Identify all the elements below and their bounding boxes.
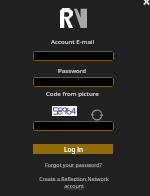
staticText: Password: [58, 66, 87, 74]
staticText: Code from picture: [46, 89, 99, 97]
staticText: Log in: [64, 145, 83, 154]
button[interactable]: Forgot your password?: [0, 161, 147, 168]
button[interactable]: Refresh code: [91, 109, 103, 121]
button[interactable]: [33, 51, 114, 61]
staticText: Account E-mail: [51, 37, 95, 45]
button[interactable]: Create a Reflection Network account: [0, 175, 147, 190]
button[interactable]: Close: [140, 0, 150, 8]
button[interactable]: Log in: [33, 144, 113, 154]
button[interactable]: Captcha image: [52, 106, 77, 116]
staticText: Create a Reflection Network account: [39, 175, 109, 190]
button[interactable]: [33, 77, 114, 87]
button[interactable]: [33, 121, 114, 131]
staticText: Forgot your password?: [45, 161, 102, 168]
